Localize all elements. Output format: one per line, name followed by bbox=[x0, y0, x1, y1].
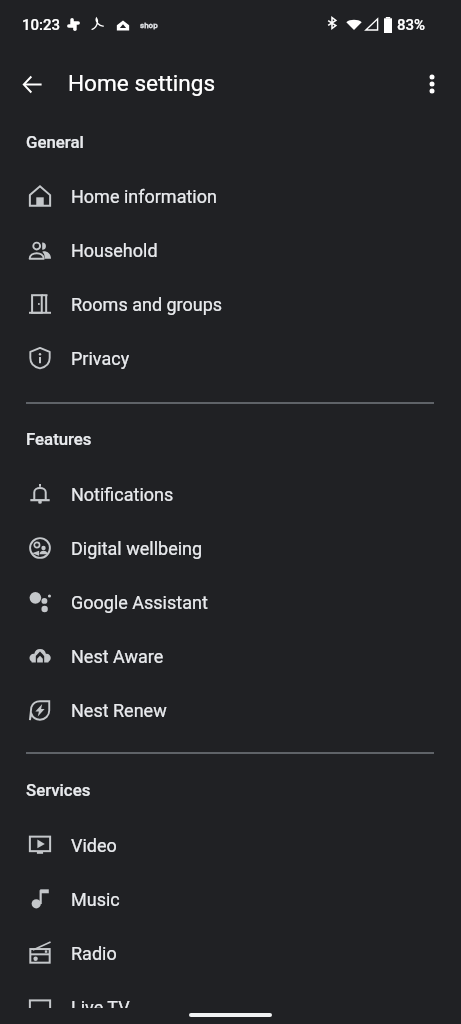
staticText: Radio bbox=[71, 943, 117, 964]
staticText: 83% bbox=[397, 16, 426, 34]
staticText: Services bbox=[26, 780, 91, 800]
staticText: 10:23 bbox=[22, 16, 61, 34]
staticText: Google Assistant bbox=[71, 592, 208, 613]
staticText: Nest Aware bbox=[71, 646, 164, 667]
button[interactable]: Radio bbox=[0, 926, 461, 980]
button[interactable]: Home information bbox=[0, 169, 461, 223]
staticText: Music bbox=[71, 889, 120, 910]
staticText: Household bbox=[71, 240, 158, 261]
staticText: shop bbox=[140, 21, 158, 30]
staticText: Nest Renew bbox=[71, 700, 167, 721]
button[interactable]: Back bbox=[10, 62, 54, 106]
button[interactable]: Household bbox=[0, 223, 461, 277]
button[interactable]: Nest Renew bbox=[0, 683, 461, 737]
button[interactable]: More options bbox=[410, 62, 454, 106]
button[interactable]: Music bbox=[0, 872, 461, 926]
button[interactable]: Notifications bbox=[0, 467, 461, 521]
staticText: Digital wellbeing bbox=[71, 538, 203, 559]
button[interactable]: Digital wellbeing bbox=[0, 521, 461, 575]
staticText: Features bbox=[26, 429, 92, 449]
staticText: Privacy bbox=[71, 348, 130, 369]
staticText: General bbox=[26, 132, 84, 152]
button[interactable]: Google Assistant bbox=[0, 575, 461, 629]
button[interactable]: Video bbox=[0, 818, 461, 872]
button[interactable]: Privacy bbox=[0, 331, 461, 385]
staticText: Notifications bbox=[71, 484, 174, 505]
button[interactable]: Nest Aware bbox=[0, 629, 461, 683]
button[interactable]: Live TV bbox=[0, 980, 461, 1024]
staticText: Home information bbox=[71, 186, 217, 207]
staticText: Rooms and groups bbox=[71, 294, 223, 315]
button[interactable]: Rooms and groups bbox=[0, 277, 461, 331]
staticText: Home settings bbox=[68, 70, 216, 96]
staticText: Live TV bbox=[71, 997, 130, 1018]
staticText: Video bbox=[71, 835, 117, 856]
